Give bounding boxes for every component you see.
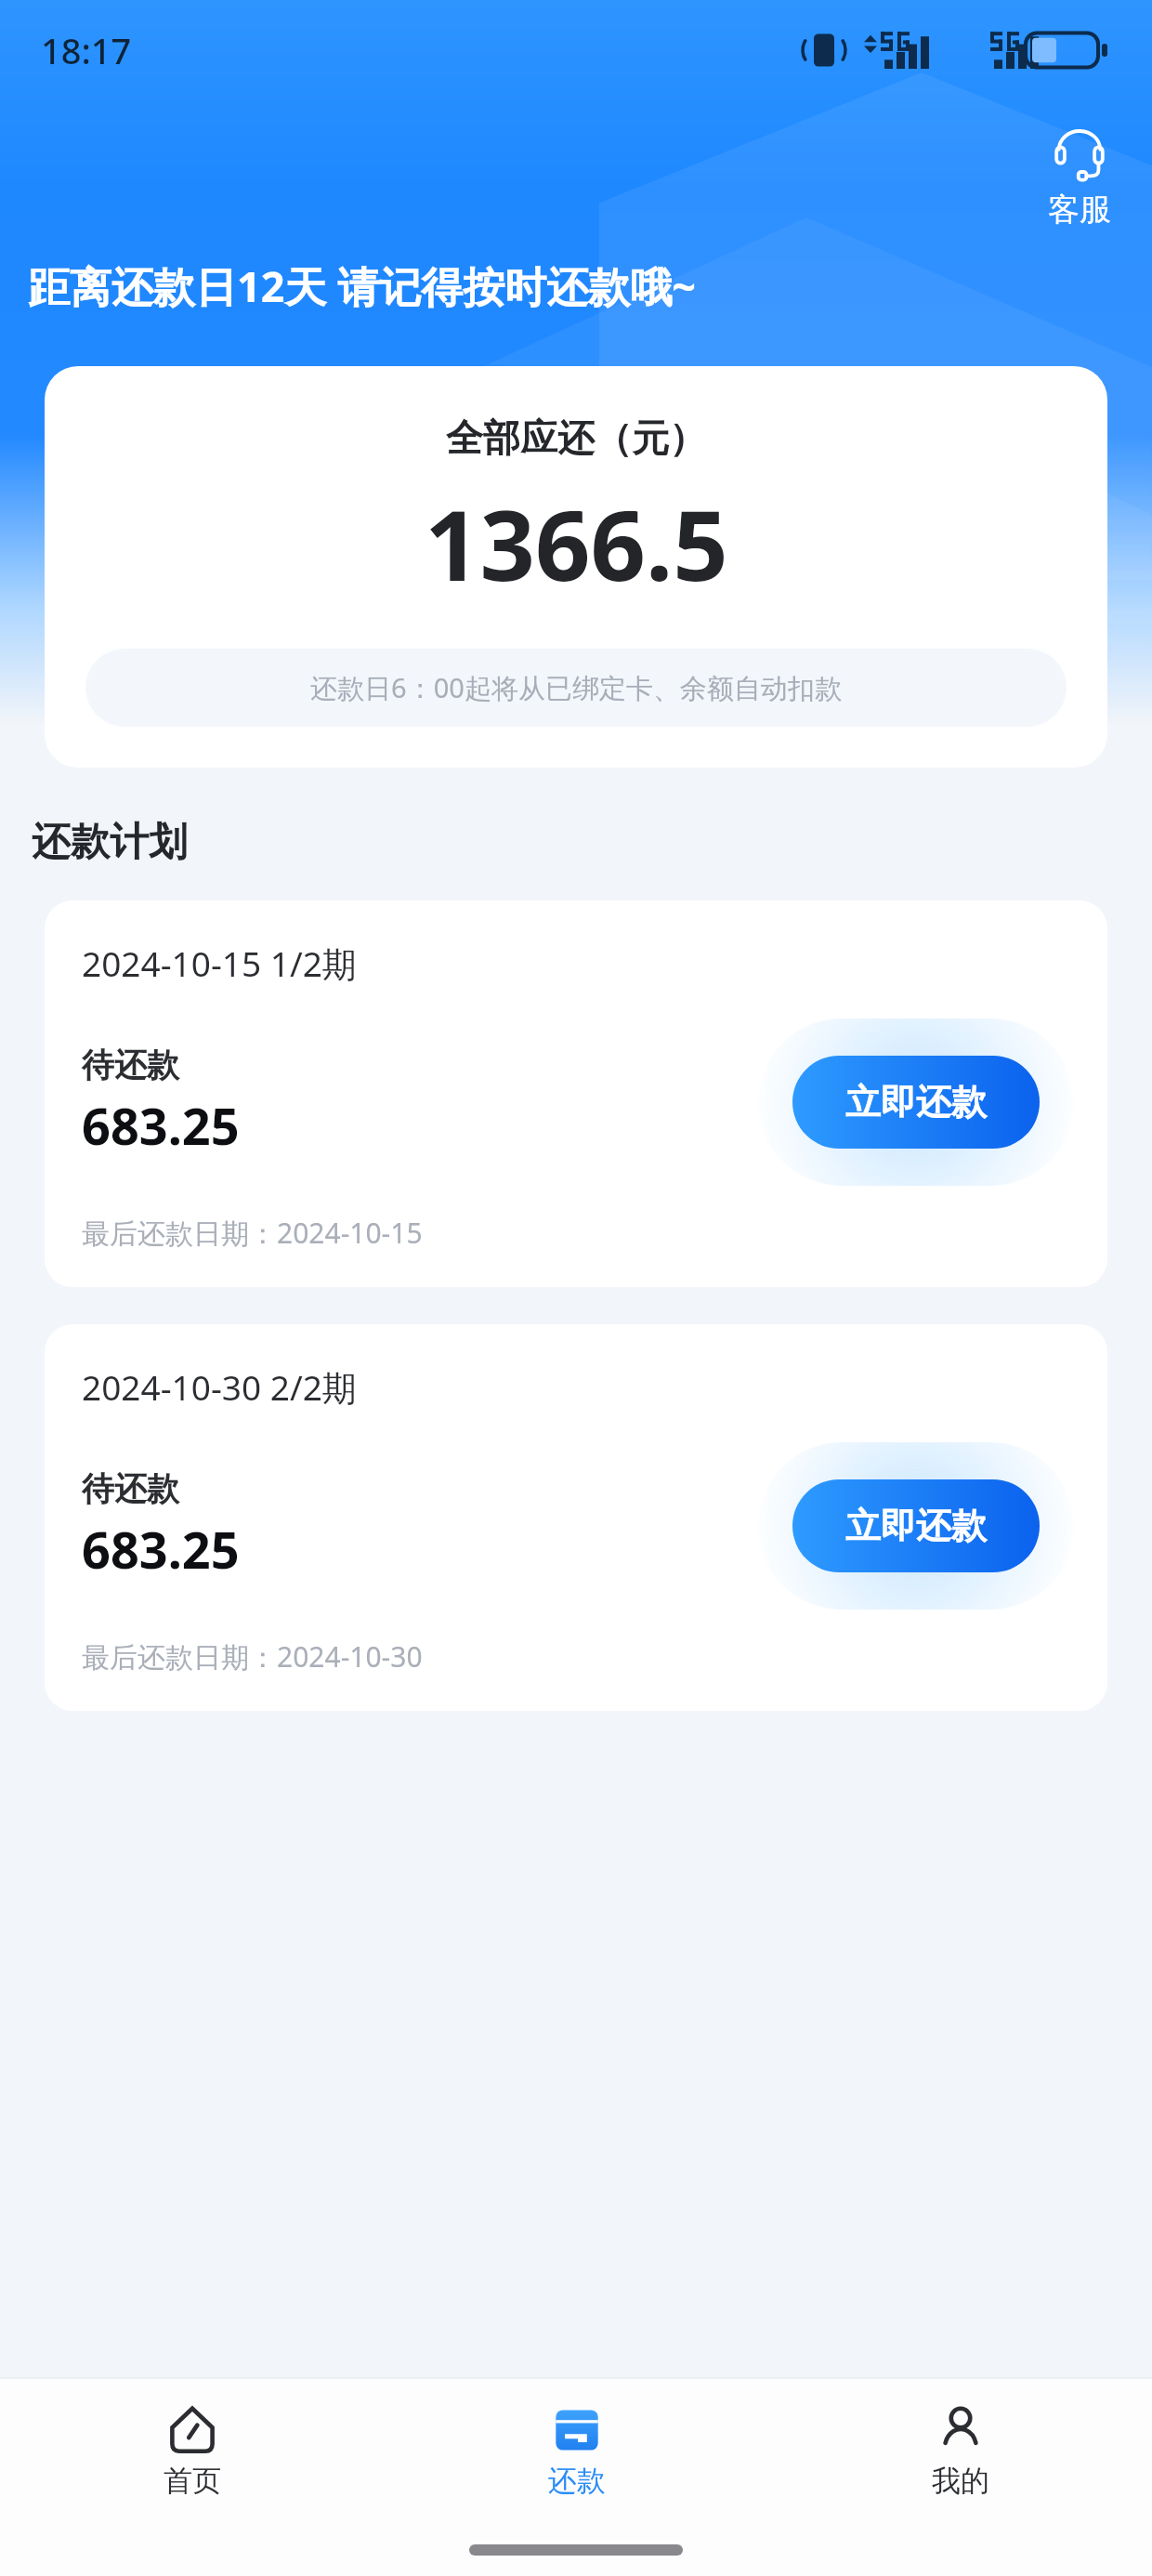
- staticText: 最后还款日期：2024-10-30: [82, 1637, 423, 1676]
- button[interactable]: 客服 Customer service: [1039, 123, 1120, 233]
- staticText: 立即还款: [845, 1080, 987, 1124]
- button[interactable]: 2024-10-15 1/2期: [45, 900, 1107, 1287]
- staticText: 18:17: [41, 26, 132, 74]
- button[interactable]: 还款: [385, 2379, 768, 2524]
- staticText: 2024-10-30 2/2期: [82, 1363, 357, 1411]
- staticText: 距离还款日12天 请记得按时还款哦~: [28, 257, 696, 314]
- staticText: 我的: [932, 2463, 989, 2499]
- button[interactable]: 2024-10-30 2/2期: [45, 1324, 1107, 1711]
- staticText: 2024-10-15 1/2期: [82, 940, 357, 987]
- staticText: 还款日6：00起将从已绑定卡、余额自动扣款: [310, 669, 842, 706]
- staticText: 全部应还（元）: [446, 414, 706, 461]
- button[interactable]: 首页: [0, 2379, 385, 2524]
- button[interactable]: 我的: [768, 2379, 1152, 2524]
- staticText: 立即还款: [845, 1504, 987, 1548]
- button[interactable]: 立即还款: [792, 1479, 1040, 1572]
- staticText: 683.25: [82, 1091, 240, 1160]
- staticText: 还款: [548, 2463, 606, 2499]
- staticText: 还款计划: [32, 818, 188, 867]
- staticText: 客服: [1048, 190, 1111, 230]
- button[interactable]: 立即还款: [792, 1056, 1040, 1149]
- staticText: 最后还款日期：2024-10-15: [82, 1214, 423, 1252]
- staticText: 待还款: [82, 1045, 179, 1085]
- staticText: 待还款: [82, 1468, 179, 1509]
- staticText: 683.25: [82, 1515, 240, 1584]
- staticText: 首页: [164, 2463, 221, 2499]
- staticText: 1366.5: [425, 478, 728, 610]
